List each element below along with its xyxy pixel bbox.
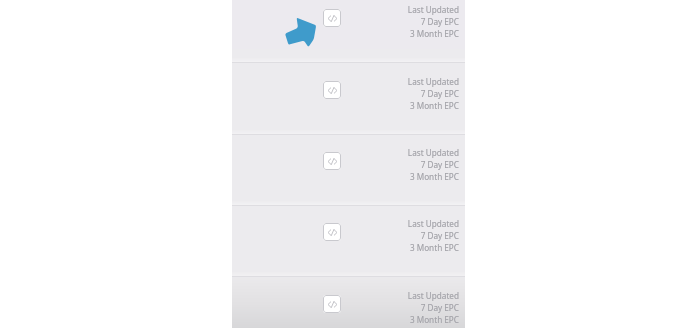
staticText: 3 Month EPC	[409, 100, 459, 111]
staticText: 7 Day EPC	[420, 302, 459, 313]
button[interactable]: View code	[232, 64, 465, 135]
staticText: 3 Month EPC	[409, 242, 459, 253]
staticText: 3 Month EPC	[409, 171, 459, 182]
staticText: 7 Day EPC	[420, 230, 459, 241]
button[interactable]: View code	[323, 152, 341, 170]
button[interactable]: View code	[323, 295, 341, 313]
staticText: Last Updated	[407, 76, 459, 87]
staticText: 7 Day EPC	[420, 16, 459, 27]
other: Pointer	[282, 15, 320, 49]
button[interactable]: View code	[232, 206, 465, 277]
staticText: Last Updated	[407, 218, 459, 229]
button[interactable]: View code	[232, 135, 465, 206]
button[interactable]: View code	[232, 0, 465, 63]
staticText: 3 Month EPC	[409, 28, 459, 39]
staticText: 7 Day EPC	[420, 88, 459, 99]
staticText: Last Updated	[407, 147, 459, 158]
button[interactable]: View code	[232, 278, 465, 330]
staticText: Last Updated	[407, 4, 459, 15]
button[interactable]: View code	[323, 81, 341, 99]
staticText: Last Updated	[407, 290, 459, 301]
button[interactable]: View code	[323, 9, 341, 27]
staticText: 3 Month EPC	[409, 314, 459, 325]
button[interactable]: View code	[323, 223, 341, 241]
staticText: 7 Day EPC	[420, 159, 459, 170]
